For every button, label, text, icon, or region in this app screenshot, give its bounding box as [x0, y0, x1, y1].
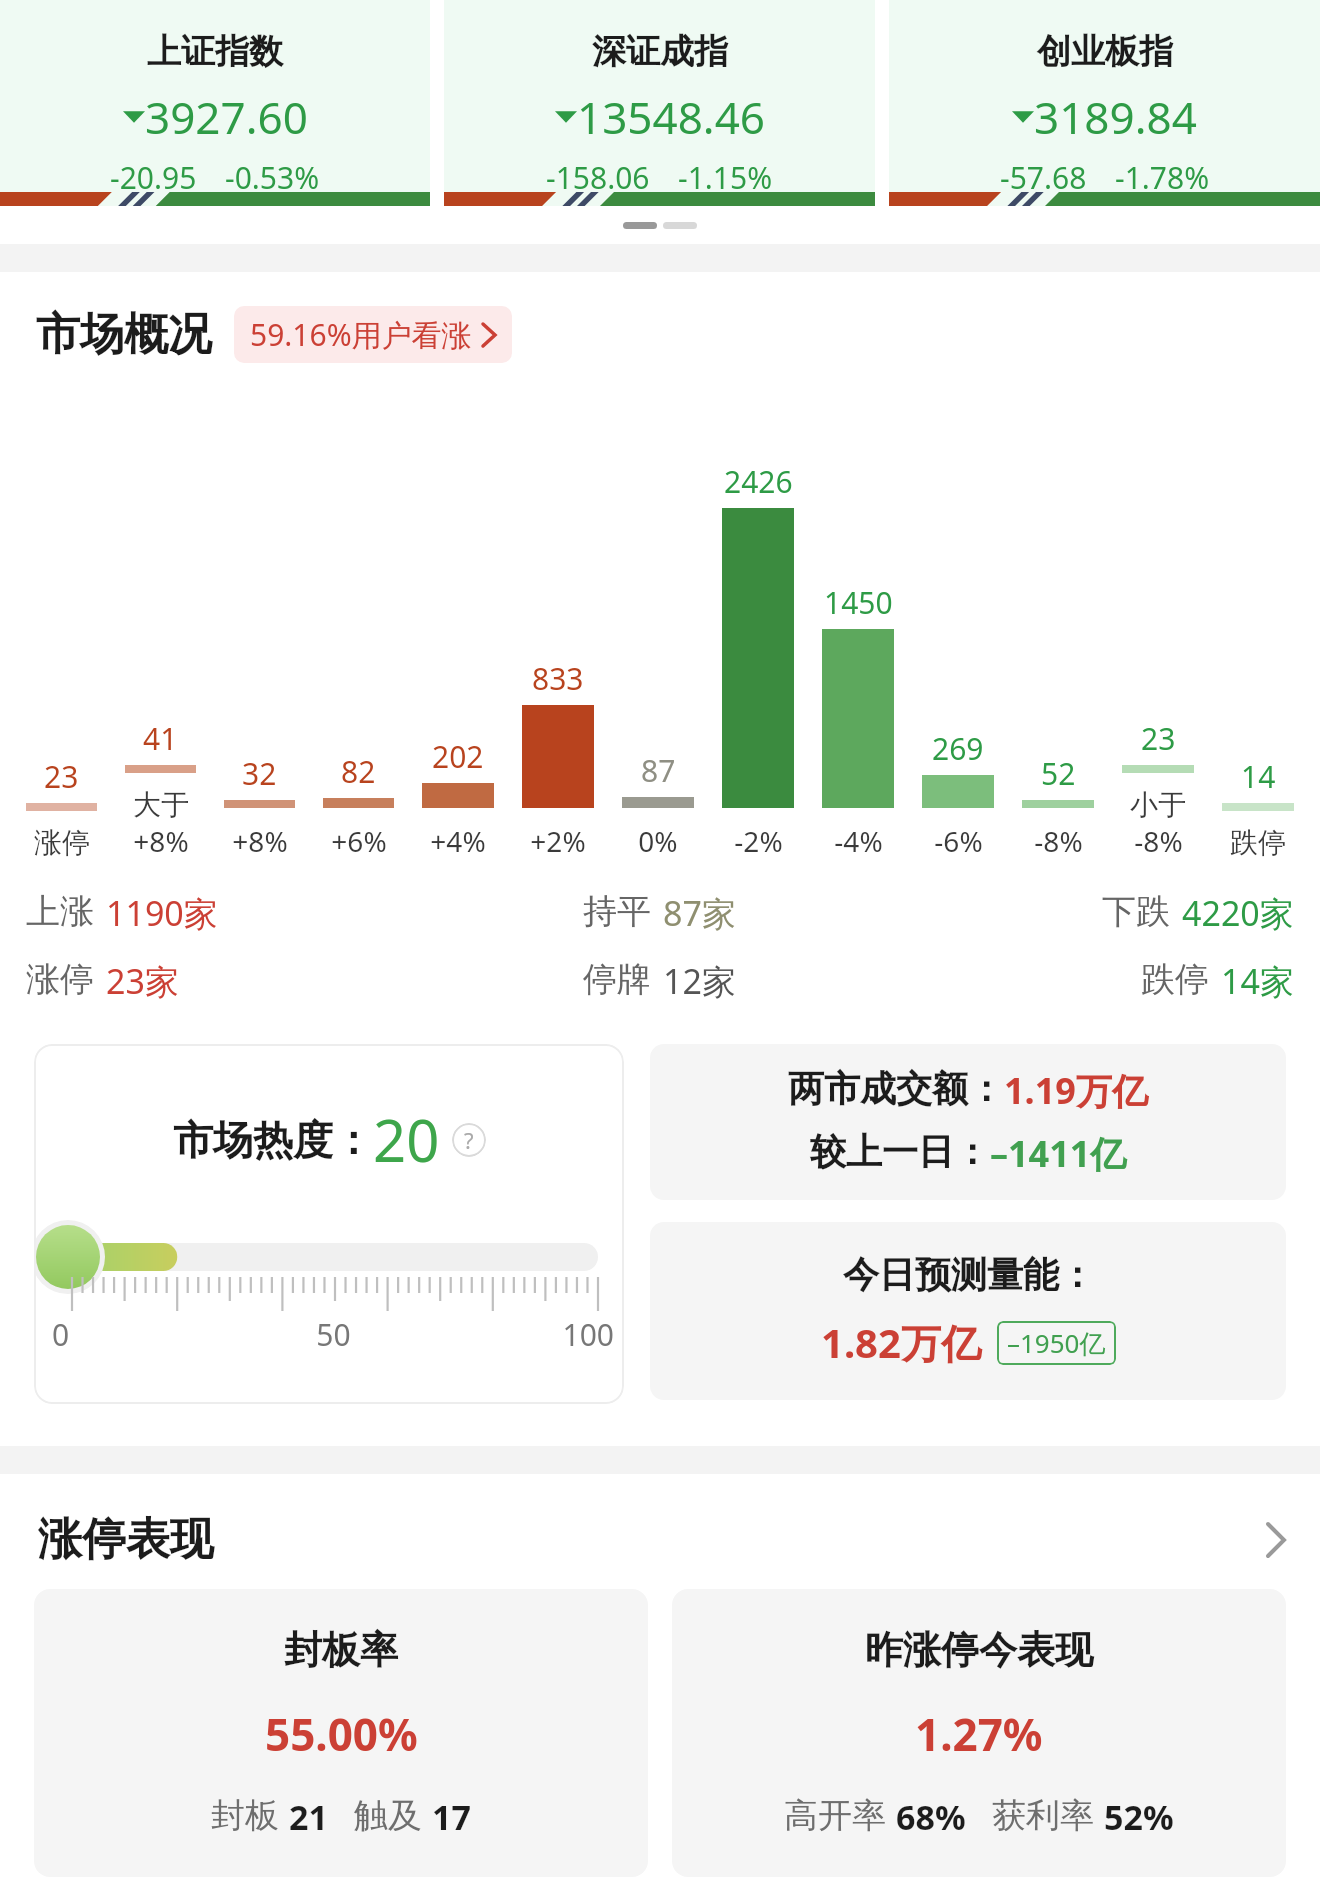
staticText: 高开率	[784, 1794, 886, 1837]
staticText: 今日预测量能：	[843, 1252, 1095, 1297]
staticText: 创业板指	[1037, 30, 1173, 73]
staticText: 87	[641, 750, 676, 791]
staticText: 涨停	[26, 958, 94, 1001]
button[interactable]: 上证指数	[0, 0, 430, 206]
staticText: 0%	[638, 822, 678, 860]
staticText: 昨涨停今表现	[865, 1626, 1093, 1674]
staticText: 52%	[1104, 1794, 1174, 1840]
staticText: 1450	[824, 582, 893, 623]
button[interactable]: 封板率	[34, 1589, 648, 1877]
other: 更多	[1266, 1522, 1286, 1558]
staticText: 3927.60	[145, 87, 308, 147]
staticText: -6%	[934, 822, 983, 860]
staticText: 4220家	[1182, 890, 1294, 936]
staticText: -158.06	[546, 157, 650, 198]
staticText: 1190家	[106, 890, 218, 936]
staticText: 23	[44, 756, 79, 797]
staticText: 82	[341, 751, 376, 792]
staticText: -2%	[734, 822, 783, 860]
staticText: 大于	[133, 787, 189, 822]
staticText: 100	[427, 1314, 614, 1355]
staticText: 停牌	[583, 958, 651, 1001]
button[interactable]: 深证成指	[444, 0, 875, 206]
staticText: 55.00%	[265, 1704, 418, 1764]
staticText: 跌停	[1230, 825, 1286, 860]
staticText: +2%	[530, 822, 586, 860]
staticText: 32	[242, 753, 277, 794]
staticText: 涨停表现	[38, 1512, 214, 1567]
staticText: 202	[432, 736, 484, 777]
button[interactable]: 涨停表现	[0, 1474, 1320, 1589]
button[interactable]: 说明	[452, 1123, 486, 1157]
staticText: 触及	[354, 1794, 422, 1837]
staticText: +8%	[133, 822, 189, 860]
staticText: 下跌	[1102, 890, 1170, 933]
staticText: 封板率	[284, 1626, 398, 1674]
staticText: 上涨	[26, 890, 94, 933]
staticText: +6%	[331, 822, 387, 860]
staticText: 23	[1141, 718, 1176, 759]
staticText: 0	[52, 1314, 240, 1355]
staticText: 833	[532, 658, 584, 699]
staticText: +8%	[232, 822, 288, 860]
staticText: 1.19万亿	[1004, 1066, 1148, 1115]
staticText: 68%	[896, 1794, 966, 1840]
staticText: 1.27%	[915, 1704, 1043, 1764]
staticText: 封板	[211, 1794, 279, 1837]
button[interactable]: 两市成交额：	[650, 1044, 1286, 1200]
staticText: 市场热度：	[173, 1115, 373, 1165]
staticText: -1.15%	[678, 157, 773, 198]
staticText: -20.95	[110, 157, 197, 198]
staticText: 市场概况	[36, 307, 212, 362]
staticText: -0.53%	[225, 157, 320, 198]
staticText: 获利率	[992, 1794, 1094, 1837]
staticText: –1950亿	[1007, 1325, 1106, 1361]
staticText: 50	[240, 1314, 427, 1355]
staticText: -8%	[1134, 822, 1183, 860]
staticText: -1.78%	[1115, 157, 1210, 198]
staticText: 41	[143, 718, 178, 759]
staticText: -57.68	[1000, 157, 1087, 198]
staticText: 20	[373, 1100, 440, 1179]
staticText: 269	[932, 728, 984, 769]
button[interactable]: 昨涨停今表现	[672, 1589, 1286, 1877]
staticText: 3189.84	[1034, 87, 1197, 147]
staticText: 两市成交额：	[788, 1066, 1004, 1111]
staticText: 上证指数	[147, 30, 283, 73]
staticText: 87家	[663, 890, 736, 936]
staticText: 1.82万亿	[821, 1315, 981, 1370]
staticText: 23家	[106, 958, 179, 1004]
button[interactable]: 59.16%用户看涨	[234, 306, 512, 363]
staticText: 小于	[1130, 787, 1186, 822]
button[interactable]: 创业板指	[889, 0, 1320, 206]
staticText: –1411亿	[990, 1129, 1127, 1178]
staticText: +4%	[430, 822, 486, 860]
staticText: ?	[464, 1125, 474, 1155]
staticText: 52	[1041, 753, 1076, 794]
staticText: 持平	[583, 890, 651, 933]
staticText: 21	[289, 1794, 328, 1840]
staticText: -4%	[834, 822, 883, 860]
staticText: 跌停	[1141, 958, 1209, 1001]
staticText: 2426	[724, 461, 793, 502]
staticText: 59.16%用户看涨	[250, 314, 472, 355]
button[interactable]: 今日预测量能：	[650, 1222, 1286, 1400]
staticText: 12家	[663, 958, 736, 1004]
staticText: 较上一日：	[810, 1129, 990, 1174]
staticText: 17	[432, 1794, 471, 1840]
staticText: 涨停	[34, 825, 90, 860]
staticText: 深证成指	[592, 30, 728, 73]
button[interactable]: 市场热度：	[34, 1044, 624, 1404]
staticText: 13548.46	[577, 87, 765, 147]
staticText: -8%	[1034, 822, 1083, 860]
staticText: 14	[1241, 756, 1276, 797]
staticText: 14家	[1221, 958, 1294, 1004]
